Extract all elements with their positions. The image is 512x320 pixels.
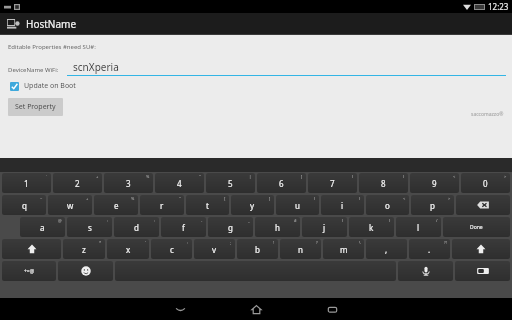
staticText: < bbox=[403, 196, 406, 201]
button[interactable]: b bbox=[237, 239, 278, 259]
staticText: c bbox=[170, 244, 174, 255]
button[interactable]: t bbox=[186, 195, 229, 215]
staticText: +=@ bbox=[24, 268, 35, 275]
button[interactable]: n bbox=[280, 239, 321, 259]
button[interactable]: s bbox=[67, 217, 112, 237]
button[interactable]: Switch keyboard bbox=[455, 261, 510, 281]
button[interactable]: l bbox=[396, 217, 441, 237]
button[interactable]: e bbox=[94, 195, 138, 215]
button[interactable]: Update on Boot bbox=[10, 81, 76, 91]
staticText: ) bbox=[389, 218, 391, 223]
button[interactable]: a bbox=[20, 217, 65, 237]
staticText: 7 bbox=[330, 178, 335, 189]
staticText: 6 bbox=[279, 178, 284, 189]
staticText: u bbox=[295, 200, 300, 211]
button[interactable]: j bbox=[302, 217, 347, 237]
staticText: " bbox=[199, 174, 201, 179]
staticText: z bbox=[82, 244, 86, 255]
button[interactable]: 2 bbox=[53, 173, 102, 193]
button[interactable]: 0 bbox=[461, 173, 510, 193]
staticText: ; bbox=[230, 240, 232, 245]
staticText: % bbox=[131, 196, 135, 201]
button[interactable]: d bbox=[114, 217, 159, 237]
button[interactable]: w bbox=[48, 195, 92, 215]
button[interactable]: Shift bbox=[2, 239, 61, 259]
staticText: f bbox=[182, 222, 185, 233]
staticText: [ bbox=[224, 196, 226, 201]
staticText: s bbox=[88, 222, 92, 233]
staticText: i bbox=[341, 200, 344, 211]
button[interactable]: q bbox=[2, 195, 46, 215]
button[interactable]: 8 bbox=[359, 173, 408, 193]
button[interactable]: Done bbox=[443, 217, 510, 237]
button[interactable]: k bbox=[349, 217, 394, 237]
staticText: 9 bbox=[432, 178, 437, 189]
staticText: ( bbox=[342, 218, 344, 223]
button[interactable]: Hide keyboard bbox=[169, 298, 191, 320]
button[interactable]: h bbox=[255, 217, 300, 237]
staticText: h bbox=[275, 222, 280, 233]
button[interactable]: o bbox=[366, 195, 409, 215]
button[interactable]: , bbox=[366, 239, 407, 259]
staticText: 4 bbox=[177, 178, 182, 189]
button[interactable]: 5 bbox=[206, 173, 255, 193]
button[interactable]: Emoji bbox=[58, 261, 113, 281]
staticText: j bbox=[323, 222, 326, 233]
button[interactable]: Voice input bbox=[398, 261, 453, 281]
button[interactable]: 9 bbox=[410, 173, 459, 193]
staticText: t bbox=[206, 200, 209, 211]
staticText: " bbox=[179, 196, 181, 201]
button[interactable]: g bbox=[208, 217, 253, 237]
button[interactable]: f bbox=[161, 217, 206, 237]
staticText: d bbox=[134, 222, 139, 233]
button[interactable]: 7 bbox=[308, 173, 357, 193]
button[interactable]: Set Property bbox=[8, 98, 63, 116]
button[interactable]: v bbox=[194, 239, 235, 259]
button[interactable]: i bbox=[321, 195, 364, 215]
staticText: | bbox=[249, 174, 252, 179]
staticText: 8 bbox=[381, 178, 386, 189]
button[interactable]: Recent apps bbox=[321, 298, 343, 320]
staticText: Update on Boot bbox=[24, 81, 76, 91]
staticText: . bbox=[428, 244, 431, 255]
button[interactable]: 6 bbox=[257, 173, 306, 193]
staticText: k bbox=[369, 222, 374, 233]
staticText: ?! bbox=[444, 240, 447, 245]
staticText: > bbox=[504, 174, 507, 179]
button[interactable]: Space bbox=[115, 261, 396, 281]
staticText: b bbox=[255, 244, 260, 255]
staticText: x bbox=[126, 244, 131, 255]
staticText: > bbox=[448, 196, 451, 201]
staticText: 5 bbox=[228, 178, 233, 189]
staticText: % bbox=[146, 174, 150, 179]
staticText: 2 bbox=[75, 178, 80, 189]
button[interactable]: Backspace bbox=[456, 195, 510, 215]
staticText: \ bbox=[359, 240, 361, 245]
button[interactable]: y bbox=[231, 195, 274, 215]
staticText: < bbox=[453, 174, 456, 179]
staticText: scnXperia bbox=[73, 60, 119, 74]
button[interactable]: Home bbox=[245, 298, 267, 320]
button[interactable]: +=@ bbox=[2, 261, 56, 281]
staticText: _ bbox=[248, 218, 250, 223]
button[interactable]: z bbox=[63, 239, 105, 259]
button[interactable]: . bbox=[409, 239, 450, 259]
button[interactable]: Shift bbox=[452, 239, 510, 259]
button[interactable]: u bbox=[276, 195, 319, 215]
staticText: Set Property bbox=[15, 102, 56, 112]
staticText: ' bbox=[145, 240, 146, 245]
button[interactable]: r bbox=[140, 195, 184, 215]
button[interactable]: m bbox=[323, 239, 364, 259]
staticText: / bbox=[436, 218, 438, 223]
button[interactable]: 3 bbox=[104, 173, 153, 193]
button[interactable]: c bbox=[151, 239, 192, 259]
staticText: e bbox=[114, 200, 119, 211]
button[interactable]: 4 bbox=[155, 173, 204, 193]
staticText: m bbox=[340, 244, 348, 255]
button[interactable]: 1 bbox=[2, 173, 51, 193]
button[interactable]: scnXperia bbox=[67, 60, 506, 76]
staticText: HostName bbox=[26, 17, 77, 31]
button[interactable]: p bbox=[411, 195, 454, 215]
staticText: w bbox=[67, 200, 74, 211]
button[interactable]: x bbox=[107, 239, 149, 259]
